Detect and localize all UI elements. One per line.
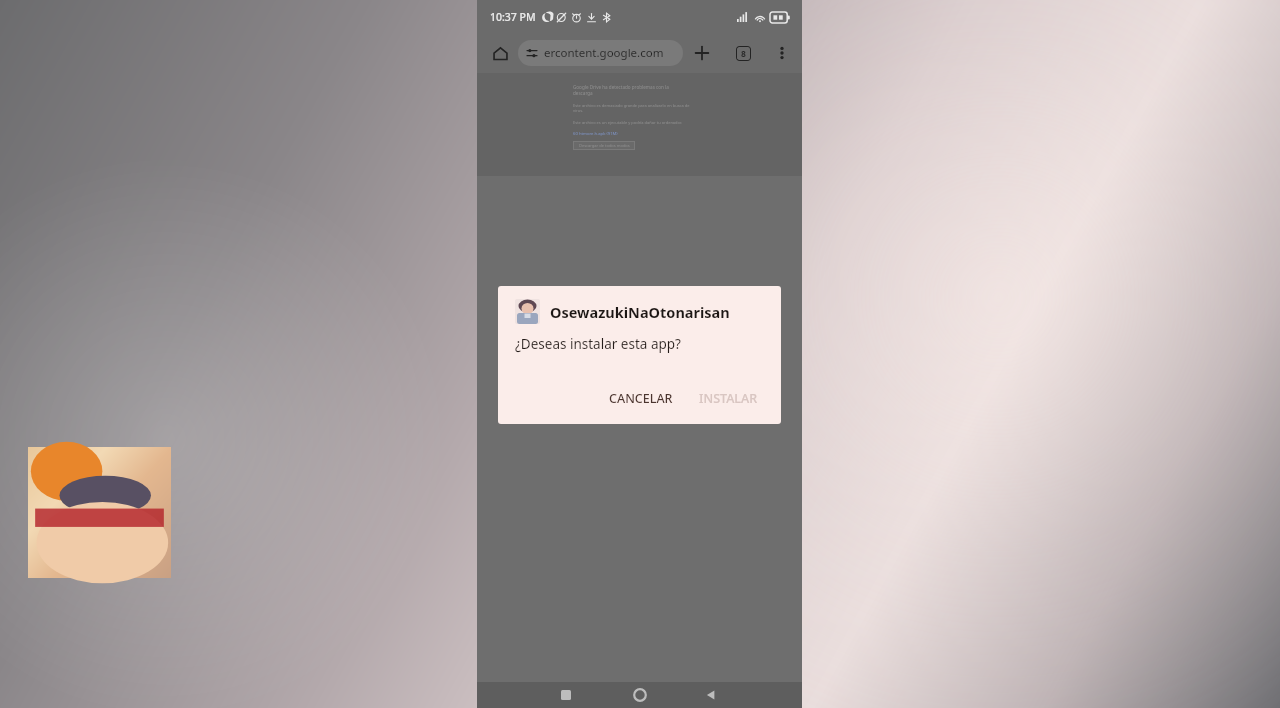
staticText: Este archivo es demasiado grande para an… <box>573 103 690 108</box>
button[interactable]: Open tabs, 8 <box>728 38 758 68</box>
staticText: OsewazukiNaOtonarisan <box>550 302 730 322</box>
button[interactable]: New tab <box>687 38 717 68</box>
staticText: virus. <box>573 108 584 113</box>
staticText: ercontent.google.com <box>544 45 664 61</box>
button[interactable]: Back <box>696 682 726 708</box>
staticText: descarga <box>573 90 593 96</box>
button[interactable]: Home <box>486 39 514 67</box>
staticText: CANCELAR <box>609 390 673 407</box>
button[interactable]: INSTALAR <box>688 383 769 414</box>
button[interactable]: Descargar de todos modos <box>573 141 635 150</box>
staticText: Google Drive ha detectado problemas con … <box>573 84 669 90</box>
button[interactable]: Recent apps <box>551 682 581 708</box>
staticText: Este archivo es un ejecutable y podría d… <box>573 120 683 125</box>
button[interactable]: Home <box>625 682 655 708</box>
button[interactable]: ercontent.google.com <box>518 40 683 66</box>
button[interactable]: CANCELAR <box>598 383 684 414</box>
staticText: ¿Deseas instalar esta app? <box>515 335 681 353</box>
staticText: INSTALAR <box>699 390 758 407</box>
button[interactable]: More options <box>767 38 797 68</box>
staticText: Descargar de todos modos <box>579 143 630 148</box>
staticText: 60 htmore.h.apk (91M) <box>573 131 618 137</box>
staticText: 10:37 PM <box>490 10 536 24</box>
staticText: 8 <box>741 48 746 60</box>
